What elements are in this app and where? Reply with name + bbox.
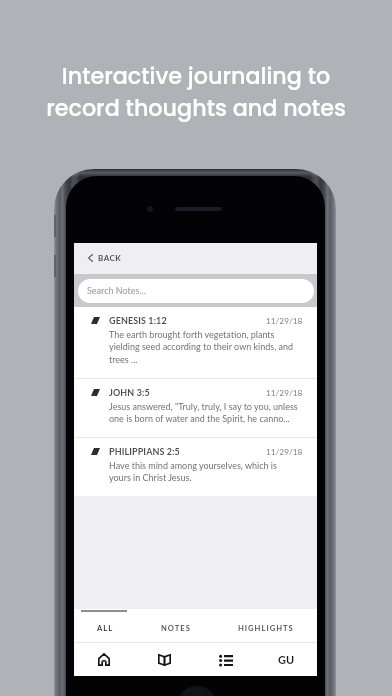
staticText: NOTES <box>161 623 191 632</box>
staticText: 11/29/18 <box>266 388 303 398</box>
button[interactable]: Search Notes... <box>78 279 314 303</box>
button[interactable]: ALL <box>96 613 115 642</box>
staticText: PHILIPPIANS 2:5 <box>109 446 180 457</box>
staticText: ALL <box>97 623 114 632</box>
staticText: Interactive journaling to record thought… <box>46 61 346 124</box>
button[interactable]: JOHN 3:5 <box>74 379 317 437</box>
staticText: 11/29/18 <box>266 316 303 326</box>
staticText: HIGHLIGHTS <box>238 623 294 632</box>
staticText: GU <box>278 653 295 666</box>
staticText: JOHN 3:5 <box>109 387 150 398</box>
button[interactable]: GENESIS 1:12 <box>74 307 317 378</box>
staticText: GENESIS 1:12 <box>109 315 167 326</box>
button[interactable]: PHILIPPIANS 2:5 <box>74 438 317 496</box>
staticText: Jesus answered, “Truly, truly, I say to … <box>109 401 298 424</box>
staticText: The earth brought forth vegetation, plan… <box>109 329 298 365</box>
button[interactable]: Home <box>74 643 134 676</box>
staticText: Search Notes... <box>87 285 146 296</box>
button[interactable]: GU <box>256 643 317 676</box>
button[interactable]: NOTES <box>160 613 192 642</box>
button[interactable]: BACK <box>84 247 128 269</box>
staticText: Have this mind among yourselves, which i… <box>109 460 298 483</box>
staticText: BACK <box>98 253 122 263</box>
button[interactable]: HIGHLIGHTS <box>237 613 295 642</box>
staticText: 11/29/18 <box>266 447 303 457</box>
button[interactable]: Notes <box>195 643 256 676</box>
button[interactable]: Bible <box>134 643 195 676</box>
